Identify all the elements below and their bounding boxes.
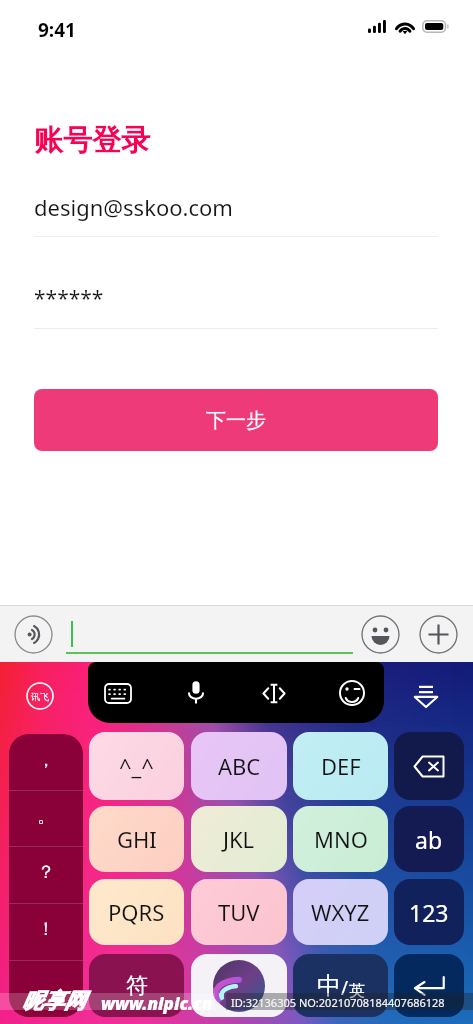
button[interactable]: 下一步 [34, 389, 438, 451]
staticText: JKL [223, 824, 255, 854]
staticText: MNO [314, 824, 368, 854]
button[interactable]: Hide keyboard [412, 684, 440, 708]
button[interactable]: Add [419, 615, 458, 654]
staticText: DEF [321, 751, 361, 781]
button[interactable]: Microphone [176, 673, 216, 713]
button[interactable]: Delete [394, 732, 464, 800]
staticText: 符 [126, 972, 148, 1000]
staticText: ID:32136305 NO:20210708184407686128 [231, 995, 445, 1010]
button[interactable]: ， [9, 734, 83, 790]
button[interactable]: Cursor [254, 673, 294, 713]
staticText: WXYZ [311, 897, 370, 927]
staticText: design@sskoo.com [34, 192, 233, 222]
staticText: 账号登录 [34, 122, 150, 159]
staticText: ？ [37, 861, 55, 884]
button[interactable]: MNO [293, 806, 388, 872]
button[interactable]: ？ [9, 846, 83, 903]
staticText: ****** [34, 284, 104, 313]
button[interactable]: 。 [9, 790, 83, 846]
staticText: ！ [37, 918, 55, 941]
button[interactable]: Emoji [332, 673, 372, 713]
staticText: PQRS [108, 897, 165, 927]
staticText: 9:41 [38, 17, 76, 43]
staticText: 。 [37, 805, 55, 828]
staticText: / [341, 975, 349, 1001]
staticText: ， [37, 749, 55, 772]
button[interactable]: Emoji [361, 615, 400, 654]
button[interactable]: Enter [394, 954, 464, 1017]
staticText: 123 [409, 897, 449, 928]
staticText: ^_^ [119, 751, 154, 781]
button[interactable]: ABC [191, 732, 287, 800]
staticText: www.nipic.cn [101, 992, 213, 1015]
button[interactable]: TUV [191, 879, 287, 945]
button[interactable]: ^_^ [89, 732, 184, 800]
button[interactable]: 中 [293, 954, 388, 1017]
button[interactable]: Voice input [14, 615, 53, 654]
button[interactable]: GHI [89, 806, 184, 872]
staticText: 讯飞 [31, 691, 49, 702]
button[interactable]: Keyboard [98, 673, 138, 713]
staticText: 昵享网 [22, 988, 85, 1014]
button[interactable] [9, 960, 83, 1017]
button[interactable]: Voice assistant [191, 954, 287, 1017]
button[interactable]: 123 [394, 879, 464, 945]
staticText: ABC [218, 751, 261, 781]
button[interactable]: DEF [293, 732, 388, 800]
button[interactable]: PQRS [89, 879, 184, 945]
button[interactable]: ab [394, 806, 464, 872]
button[interactable]: JKL [191, 806, 287, 872]
staticText: 英 [349, 981, 365, 1001]
staticText: GHI [117, 824, 157, 854]
button[interactable]: ！ [9, 903, 83, 960]
button[interactable]: WXYZ [293, 879, 388, 945]
staticText: 下一步 [206, 408, 266, 433]
staticText: 中 [317, 971, 341, 1001]
staticText: ab [415, 824, 443, 855]
button[interactable]: iFlytek [26, 682, 54, 710]
staticText: TUV [218, 897, 260, 927]
button[interactable]: 符 [89, 954, 184, 1017]
